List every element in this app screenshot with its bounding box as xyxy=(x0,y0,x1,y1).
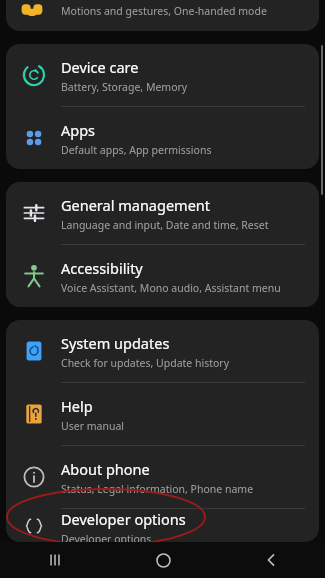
button[interactable]: Help xyxy=(6,383,319,445)
button[interactable]: Developer options xyxy=(6,509,319,542)
staticText: Accessibility xyxy=(61,258,143,278)
button[interactable]: About phone xyxy=(6,446,319,508)
button[interactable]: System updates xyxy=(6,320,319,382)
button[interactable]: Apps xyxy=(6,107,319,169)
staticText: Motions and gestures, One-handed mode xyxy=(61,4,267,18)
staticText: Voice Assistant, Mono audio, Assistant m… xyxy=(61,281,281,295)
staticText: Developer options xyxy=(61,509,186,529)
staticText: General management xyxy=(61,195,211,215)
button[interactable]: Back xyxy=(217,542,325,578)
staticText: Help xyxy=(61,396,93,416)
button[interactable]: Device care xyxy=(6,44,319,106)
staticText: Developer options xyxy=(61,532,152,542)
staticText: Apps xyxy=(61,120,96,140)
button[interactable]: Accessibility xyxy=(6,245,319,307)
staticText: Status, Legal information, Phone name xyxy=(61,482,254,496)
staticText: Check for updates, Update history xyxy=(61,356,230,370)
staticText: About phone xyxy=(61,459,150,479)
staticText: Default apps, App permissions xyxy=(61,143,212,157)
staticText: Battery, Storage, Memory xyxy=(61,80,188,94)
button[interactable]: Home xyxy=(109,542,217,578)
button[interactable]: Recent apps xyxy=(0,542,109,578)
staticText: Language and input, Date and time, Reset xyxy=(61,218,269,232)
staticText: Device care xyxy=(61,57,139,77)
button[interactable]: General management xyxy=(6,182,319,244)
button[interactable]: Motions and gestures, One-handed mode xyxy=(6,0,319,31)
staticText: User manual xyxy=(61,419,124,433)
staticText: System updates xyxy=(61,333,170,353)
